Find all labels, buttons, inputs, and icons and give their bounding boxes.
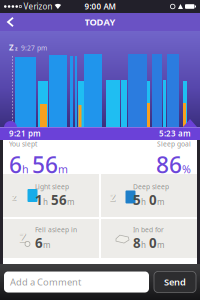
staticText: 1 (35, 191, 43, 209)
staticText: TODAY (84, 16, 115, 28)
staticText: Z (9, 42, 14, 53)
staticText: You slept (9, 139, 37, 148)
staticText: 56 (48, 191, 67, 209)
staticText: Z (20, 230, 27, 246)
staticText: m (157, 197, 164, 207)
staticText: 0 (146, 234, 157, 252)
staticText: m (43, 240, 50, 250)
staticText: Light sleep (35, 182, 69, 191)
staticText: m (67, 197, 74, 207)
staticText: 5:23 am (159, 128, 191, 139)
staticText: z (12, 191, 17, 204)
staticText: 9:21 pm (9, 128, 41, 139)
button[interactable]: Add a Comment (4, 271, 149, 292)
staticText: Deep sleep (133, 182, 169, 191)
staticText: m (157, 240, 164, 250)
staticText: 5 (133, 191, 141, 209)
staticText: 8 (133, 234, 141, 252)
staticText: Verizon (24, 1, 53, 12)
staticText: Fell asleep in (35, 225, 77, 234)
button[interactable]: Send (154, 271, 196, 292)
staticText: h (43, 197, 48, 207)
staticText: z (11, 191, 16, 203)
staticText: 9:00 AM (84, 1, 115, 12)
staticText: 86 (156, 149, 182, 179)
staticText: 6 (35, 234, 43, 252)
staticText: h (141, 197, 146, 207)
staticText: 0 (146, 191, 157, 209)
staticText: z (109, 188, 115, 204)
staticText: m (58, 162, 68, 176)
staticText: 9:27 pm (19, 43, 47, 52)
staticText: 6 (9, 149, 22, 179)
staticText: % (182, 162, 191, 176)
staticText: z (15, 45, 18, 52)
staticText: Send (164, 276, 186, 288)
staticText: z (110, 189, 116, 205)
staticText: h (141, 240, 146, 250)
staticText: Add a Comment (10, 276, 81, 288)
staticText: h (22, 162, 32, 176)
staticText: Sleep goal (157, 139, 191, 148)
staticText: In bed for (133, 225, 164, 234)
button[interactable]: Back (0, 13, 13, 31)
staticText: Z (19, 229, 26, 245)
staticText: 56 (32, 149, 58, 179)
